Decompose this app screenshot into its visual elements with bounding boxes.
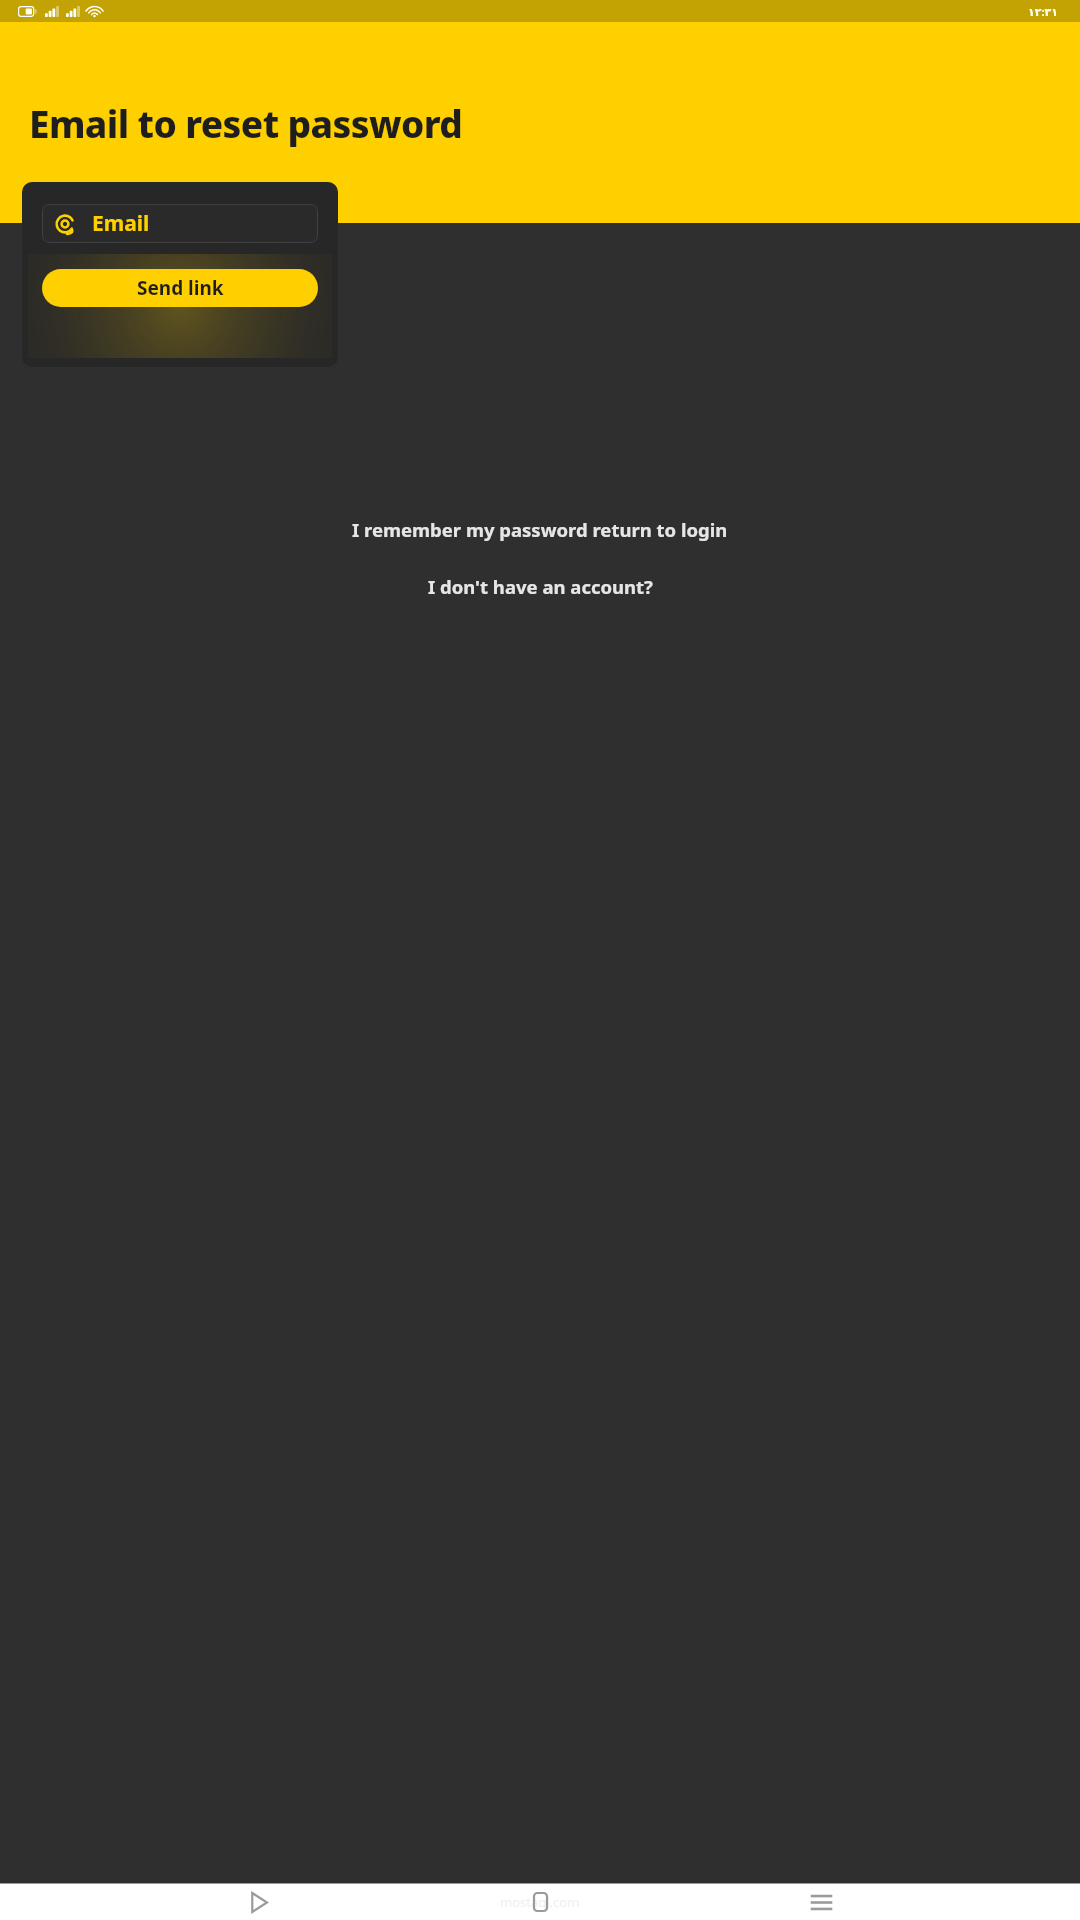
button[interactable]: I remember my password return to login xyxy=(338,511,742,548)
staticText: ١٢:٣١ xyxy=(1028,4,1058,19)
button[interactable]: Recent apps xyxy=(799,1884,843,1920)
staticText: I don't have an account? xyxy=(428,574,653,599)
staticText: Email xyxy=(92,209,150,238)
button[interactable]: Email xyxy=(42,204,318,243)
button[interactable]: Send link xyxy=(42,269,318,307)
button[interactable]: Home xyxy=(518,1884,562,1920)
button[interactable]: I don't have an account? xyxy=(414,568,667,605)
staticText: Email to reset password xyxy=(29,98,463,148)
staticText: mostaql.com xyxy=(500,1893,580,1911)
staticText: Send link xyxy=(137,275,224,301)
button[interactable]: Back xyxy=(237,1884,281,1920)
staticText: I remember my password return to login xyxy=(352,517,728,542)
